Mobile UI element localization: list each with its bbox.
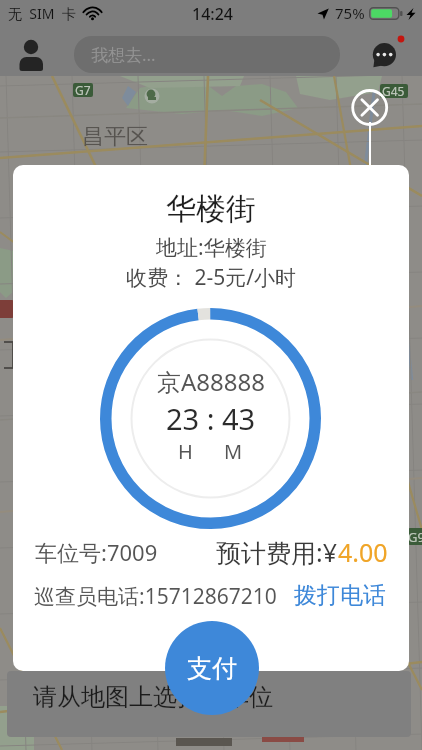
staticText: 我想去... [91,43,156,66]
staticText: 巡查员电话:15712867210 [34,582,277,611]
staticText: 预计费用:¥ [216,535,338,569]
staticText: 收费： 2-5元/小时 [126,263,297,292]
staticText: 无 SIM 卡 [8,4,76,23]
button[interactable]: 支付 [165,621,259,715]
button[interactable]: 我想去... [74,36,340,73]
staticText: 支付 [187,653,237,684]
staticText: 4.00 [338,535,388,569]
button[interactable]: 车位号:7009 [35,537,158,567]
button[interactable]: Messages [368,32,408,72]
staticText: 京A88888 [157,365,265,398]
button[interactable]: Close [350,88,390,128]
staticText: 请从地图上选择停车位 [33,682,273,712]
staticText: G95 [408,528,422,546]
staticText: 昌平区 [82,123,148,151]
staticText: G7 [75,82,91,98]
button[interactable]: 拨打电话 [294,581,386,610]
staticText: 华楼街 [166,190,256,228]
staticText: 车位号:7009 [35,537,158,567]
staticText: 地址:华楼街 [156,233,267,262]
staticText: H [178,438,193,465]
button[interactable]: Profile [16,33,48,65]
staticText: 拨打电话 [294,581,386,610]
staticText: 23 : 43 [166,399,256,438]
staticText: 14:24 [192,3,233,25]
staticText: G45 [382,83,405,99]
staticText: 75% [335,3,365,23]
staticText: M [224,438,243,465]
